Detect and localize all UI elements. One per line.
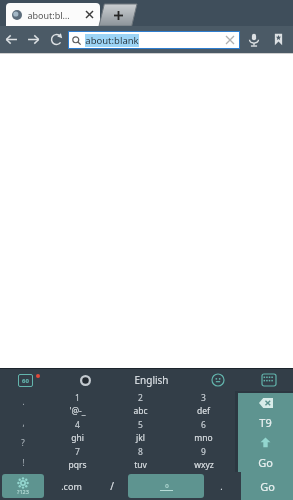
button[interactable]: 5 bbox=[109, 418, 172, 445]
staticText: English bbox=[134, 373, 169, 387]
staticText: mno bbox=[194, 432, 213, 444]
staticText: T9 bbox=[259, 415, 272, 430]
button[interactable]: , bbox=[0, 412, 46, 432]
button[interactable]: New tab bbox=[99, 4, 137, 26]
button[interactable]: Clear bbox=[224, 34, 236, 46]
staticText: about:blank bbox=[85, 34, 139, 47]
staticText: 9 bbox=[201, 446, 206, 458]
button[interactable]: ! bbox=[0, 452, 46, 472]
button[interactable]: . bbox=[204, 472, 238, 500]
button[interactable]: Keyboard layout bbox=[0, 369, 58, 391]
button[interactable]: Shift bbox=[238, 432, 293, 452]
staticText: def bbox=[197, 405, 210, 417]
staticText: jkl bbox=[136, 432, 145, 444]
staticText: 4 bbox=[75, 419, 80, 431]
button[interactable]: Theme bbox=[58, 369, 112, 391]
button[interactable]: 3 bbox=[172, 391, 235, 418]
button[interactable]: Space bbox=[128, 474, 204, 498]
button[interactable]: Voice search bbox=[242, 26, 266, 53]
button[interactable]: Emoji bbox=[191, 369, 245, 391]
button[interactable]: about:bl… bbox=[6, 3, 100, 26]
button[interactable]: Close tab bbox=[83, 8, 96, 21]
button[interactable]: Bookmark bbox=[266, 26, 290, 53]
button[interactable]: 4 bbox=[46, 418, 109, 445]
staticText: abc bbox=[133, 405, 148, 417]
staticText: about:bl… bbox=[27, 9, 70, 21]
staticText: , bbox=[22, 417, 25, 428]
staticText: / bbox=[110, 479, 114, 493]
staticText: 5 bbox=[138, 419, 143, 431]
staticText: tuv bbox=[134, 459, 147, 471]
button[interactable]: 2 bbox=[109, 391, 172, 418]
button[interactable]: Forward bbox=[22, 26, 44, 53]
staticText: 7 bbox=[75, 446, 80, 458]
button[interactable]: 7 bbox=[46, 445, 109, 472]
staticText: 1 bbox=[75, 392, 80, 404]
staticText: 0 bbox=[165, 482, 169, 490]
button[interactable]: Symbols bbox=[2, 474, 44, 498]
button[interactable]: English bbox=[112, 369, 191, 391]
staticText: .com bbox=[61, 480, 82, 492]
staticText: 6 bbox=[201, 419, 206, 431]
staticText: '@-_ bbox=[69, 405, 86, 417]
button[interactable]: about:blank bbox=[68, 31, 240, 49]
button[interactable]: ? bbox=[0, 432, 46, 452]
staticText: Go bbox=[258, 455, 273, 470]
button[interactable]: Hide keyboard bbox=[245, 369, 293, 391]
staticText: ?123 bbox=[17, 488, 29, 495]
button[interactable]: Go bbox=[241, 472, 293, 500]
staticText: ? bbox=[21, 437, 25, 448]
staticText: 3 bbox=[201, 392, 206, 404]
button[interactable]: 9 bbox=[172, 445, 235, 472]
staticText: pqrs bbox=[68, 459, 87, 471]
button[interactable]: Backspace bbox=[238, 393, 293, 412]
button[interactable]: 8 bbox=[109, 445, 172, 472]
staticText: . bbox=[220, 480, 223, 492]
button[interactable]: . bbox=[0, 391, 46, 412]
staticText: 2 bbox=[138, 392, 143, 404]
button[interactable]: Reload bbox=[44, 26, 68, 53]
button[interactable]: T9 bbox=[238, 412, 293, 432]
staticText: Go bbox=[260, 479, 275, 494]
button[interactable]: Go bbox=[238, 452, 293, 472]
button[interactable]: / bbox=[96, 472, 128, 500]
button[interactable]: 1 bbox=[46, 391, 109, 418]
staticText: 60 bbox=[22, 377, 29, 385]
staticText: wxyz bbox=[194, 459, 214, 471]
staticText: ! bbox=[22, 457, 25, 468]
staticText: 8 bbox=[138, 446, 143, 458]
button[interactable]: Back bbox=[0, 26, 22, 53]
staticText: . bbox=[22, 396, 25, 407]
staticText: ghi bbox=[71, 432, 84, 444]
button[interactable]: .com bbox=[46, 472, 96, 500]
button[interactable]: 6 bbox=[172, 418, 235, 445]
